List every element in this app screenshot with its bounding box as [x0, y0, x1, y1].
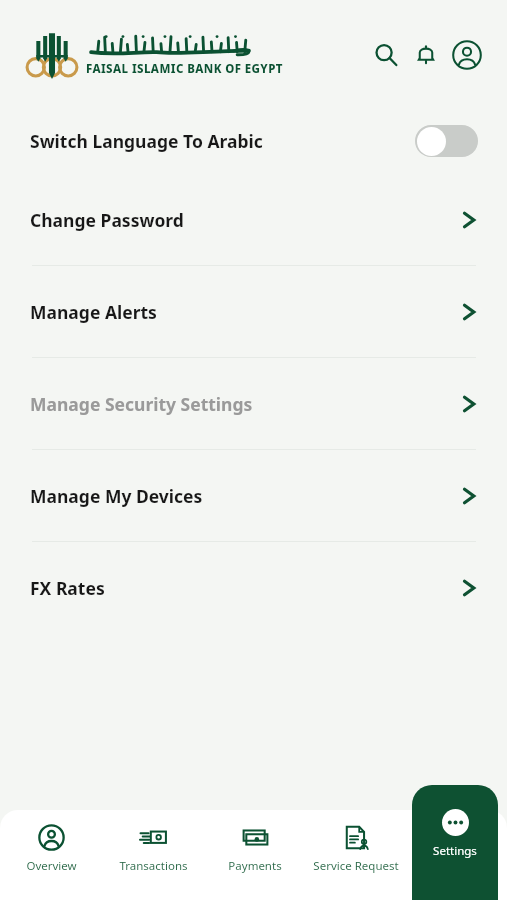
staticText: Switch Language To Arabic	[30, 129, 263, 153]
button[interactable]: Transactions	[102, 810, 204, 900]
staticText: Manage Alerts	[30, 300, 157, 324]
staticText: Service Request	[313, 858, 399, 874]
button[interactable]: FX Rates	[0, 542, 507, 633]
button[interactable]: Manage My Devices	[0, 450, 507, 541]
button[interactable]: Profile	[449, 37, 485, 73]
button[interactable]: Manage Alerts	[0, 266, 507, 357]
button[interactable]: Notifications	[409, 38, 443, 72]
button[interactable]: Payments	[204, 810, 305, 900]
staticText: Payments	[228, 858, 282, 874]
button[interactable]: Search	[369, 38, 403, 72]
button[interactable]	[415, 125, 478, 157]
staticText: FX Rates	[30, 576, 105, 600]
button[interactable]: Settings	[412, 785, 498, 900]
button[interactable]: Overview	[0, 810, 102, 900]
staticText: Transactions	[119, 858, 188, 874]
button[interactable]: Change Password	[0, 174, 507, 265]
staticText: Overview	[26, 858, 77, 874]
staticText: Manage Security Settings	[30, 392, 253, 416]
staticText: Change Password	[30, 208, 184, 232]
button[interactable]: Switch Language To Arabic	[0, 108, 507, 174]
button[interactable]: Manage Security Settings	[0, 358, 507, 449]
button[interactable]: Service Request	[305, 810, 406, 900]
staticText: FAISAL ISLAMIC BANK OF EGYPT	[86, 61, 283, 77]
staticText: Manage My Devices	[30, 484, 203, 508]
staticText: Settings	[433, 843, 477, 859]
